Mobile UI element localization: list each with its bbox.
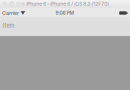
- staticText: iPhone 6 - iPhone 6 / iOS 8.3 (12F70): [26, 1, 109, 7]
- staticText: Item: [3, 22, 15, 29]
- button[interactable]: Item: [0, 22, 130, 29]
- staticText: 9:06 PM: [55, 10, 74, 16]
- staticText: Carrier: [2, 10, 19, 16]
